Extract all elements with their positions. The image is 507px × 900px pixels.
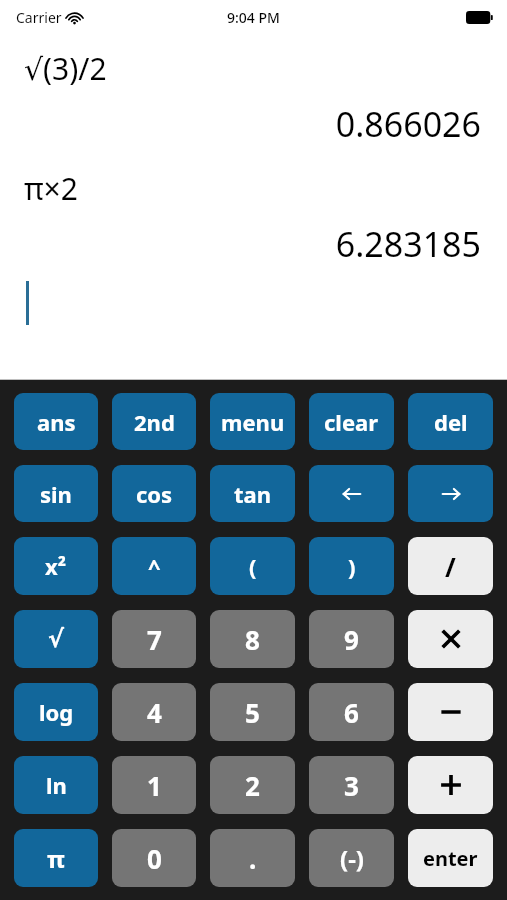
staticText: π bbox=[47, 842, 65, 875]
staticText: sin bbox=[40, 479, 72, 509]
staticText: ) bbox=[348, 551, 356, 581]
button[interactable]: menu bbox=[210, 393, 295, 450]
staticText: (-) bbox=[340, 842, 364, 875]
button[interactable]: 6 bbox=[309, 683, 394, 741]
button[interactable]: π bbox=[14, 829, 98, 887]
button[interactable]: Subtract bbox=[408, 683, 493, 741]
button[interactable]: Move cursor left bbox=[309, 465, 394, 522]
staticText: 3 bbox=[344, 768, 359, 803]
button[interactable]: Add bbox=[408, 756, 493, 814]
button[interactable]: ans bbox=[14, 393, 98, 450]
staticText: enter bbox=[423, 845, 478, 872]
button[interactable]: log bbox=[14, 683, 98, 741]
staticText: 4 bbox=[147, 695, 162, 730]
staticText: π×2 bbox=[24, 168, 78, 209]
staticText: 2nd bbox=[134, 407, 175, 437]
button[interactable]: ^ bbox=[112, 537, 196, 595]
button[interactable]: clear bbox=[309, 393, 394, 450]
button[interactable]: 5 bbox=[210, 683, 295, 741]
button[interactable]: (-) bbox=[309, 829, 394, 887]
staticText: log bbox=[39, 697, 74, 727]
button[interactable]: 1 bbox=[112, 756, 196, 814]
staticText: √(3)/2 bbox=[24, 48, 107, 89]
button[interactable]: √ bbox=[14, 610, 98, 668]
button[interactable]: cos bbox=[112, 465, 196, 522]
staticText: x² bbox=[45, 551, 67, 581]
staticText: 0.866026 bbox=[335, 101, 481, 147]
staticText: 0 bbox=[147, 841, 162, 876]
staticText: Carrier bbox=[16, 8, 62, 27]
staticText: 9:04 PM bbox=[227, 8, 280, 27]
staticText: 6.283185 bbox=[335, 221, 481, 267]
staticText: ans bbox=[37, 407, 76, 437]
button[interactable]: 9 bbox=[309, 610, 394, 668]
staticText: ln bbox=[46, 770, 67, 800]
button[interactable]: 0 bbox=[112, 829, 196, 887]
staticText: √ bbox=[48, 625, 65, 653]
button[interactable]: . bbox=[210, 829, 295, 887]
button[interactable]: ) bbox=[309, 537, 394, 595]
staticText: 1 bbox=[147, 768, 162, 803]
staticText: . bbox=[249, 841, 257, 876]
staticText: tan bbox=[234, 479, 272, 509]
staticText: cos bbox=[136, 479, 173, 509]
staticText: clear bbox=[324, 407, 379, 437]
button[interactable]: ln bbox=[14, 756, 98, 814]
button[interactable]: enter bbox=[408, 829, 493, 887]
staticText: 8 bbox=[245, 622, 260, 657]
staticText: 6 bbox=[344, 695, 359, 730]
button[interactable]: 2nd bbox=[112, 393, 196, 450]
staticText: 9 bbox=[344, 622, 359, 657]
button[interactable]: 2 bbox=[210, 756, 295, 814]
staticText: / bbox=[445, 549, 456, 584]
staticText: 2 bbox=[245, 768, 260, 803]
button[interactable]: 8 bbox=[210, 610, 295, 668]
button[interactable]: x² bbox=[14, 537, 98, 595]
button[interactable]: del bbox=[408, 393, 493, 450]
staticText: menu bbox=[221, 407, 285, 437]
button[interactable]: 4 bbox=[112, 683, 196, 741]
button[interactable]: 3 bbox=[309, 756, 394, 814]
staticText: ^ bbox=[148, 551, 161, 581]
button[interactable]: tan bbox=[210, 465, 295, 522]
staticText: 7 bbox=[147, 622, 162, 657]
staticText: ( bbox=[249, 551, 257, 581]
staticText: del bbox=[434, 407, 468, 437]
button[interactable]: sin bbox=[14, 465, 98, 522]
staticText: 5 bbox=[245, 695, 260, 730]
button[interactable]: Multiply bbox=[408, 610, 493, 668]
button[interactable]: ( bbox=[210, 537, 295, 595]
button[interactable]: / bbox=[408, 537, 493, 595]
button[interactable]: 7 bbox=[112, 610, 196, 668]
button[interactable]: Move cursor right bbox=[408, 465, 493, 522]
